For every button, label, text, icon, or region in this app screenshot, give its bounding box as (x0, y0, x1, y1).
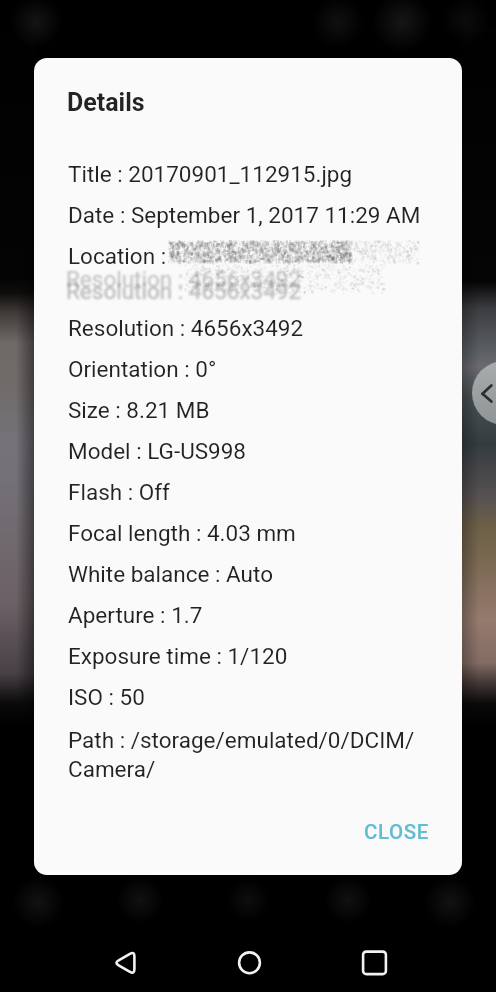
staticText: Resolution : 4656x3492 (66, 278, 302, 304)
staticText: Resolution : 4656x3492 (64, 279, 300, 305)
staticText: Resolution : 4656x3492 (64, 268, 300, 294)
staticText: Resolution : 4656x3492 (68, 279, 304, 305)
staticText: Resolution : 4656x3492 (66, 266, 302, 292)
staticText: Camera/ (68, 756, 433, 782)
staticText: Resolution : 4656x3492 (64, 264, 300, 290)
staticText: CLOSE (364, 820, 429, 844)
staticText: Focal length : 4.03 mm (68, 520, 433, 546)
staticText: Date : September 1, 2017 11:29 AM (68, 202, 433, 228)
staticText: Resolution : 4656x3492 (68, 268, 304, 294)
staticText: Resolution : 4656x3492 (67, 264, 303, 290)
staticText: Title : 20170901_112915.jpg (68, 161, 433, 187)
staticText: Resolution : 4656x3492 (65, 265, 301, 291)
staticText: Resolution : 4656x3492 (64, 280, 300, 306)
staticText: Resolution : 4656x3492 (68, 278, 304, 304)
staticText: Orientation : 0° (68, 356, 433, 382)
staticText: Model : LG-US998 (68, 438, 433, 464)
staticText: Resolution : 4656x3492 (65, 277, 301, 303)
button[interactable]: CLOSE (348, 808, 444, 856)
staticText: Resolution : 4656x3492 (65, 268, 301, 294)
staticText: Resolution : 4656x3492 (67, 268, 303, 294)
staticText: Resolution : 4656x3492 (64, 267, 300, 293)
staticText: Exposure time : 1/120 (68, 643, 433, 669)
staticText: Aperture : 1.7 (68, 602, 433, 628)
staticText: Resolution : 4656x3492 (65, 278, 301, 304)
staticText: Resolution : 4656x3492 (65, 280, 301, 306)
staticText: Resolution : 4656x3492 (64, 278, 300, 304)
staticText: Resolution : 4656x3492 (65, 279, 301, 305)
staticText: Resolution : 4656x3492 (66, 279, 302, 305)
staticText: Resolution : 4656x3492 (67, 278, 303, 304)
button[interactable]: Home (208, 925, 292, 992)
staticText: Resolution : 4656x3492 (65, 267, 301, 293)
staticText: Resolution : 4656x3492 (66, 268, 302, 294)
staticText: Resolution : 4656x3492 (66, 265, 302, 291)
staticText: Resolution : 4656x3492 (68, 277, 304, 303)
staticText: Resolution : 4656x3492 (68, 266, 304, 292)
staticText: Resolution : 4656x3492 (67, 265, 303, 291)
staticText: Resolution : 4656x3492 (67, 280, 303, 306)
button[interactable]: Previous (472, 361, 496, 425)
staticText: Resolution : 4656x3492 (64, 277, 300, 303)
staticText: Resolution : 4656x3492 (66, 277, 302, 303)
staticText: Resolution : 4656x3492 (67, 266, 303, 292)
staticText: Resolution : 4656x3492 (68, 276, 304, 302)
staticText: ISO : 50 (68, 684, 433, 710)
staticText: Size : 8.21 MB (68, 397, 433, 423)
staticText: Resolution : 4656x3492 (64, 266, 300, 292)
staticText: Resolution : 4656x3492 (64, 265, 300, 291)
staticText: Resolution : 4656x3492 (64, 276, 300, 302)
button[interactable]: Back (82, 925, 166, 992)
staticText: Resolution : 4656x3492 (68, 264, 304, 290)
staticText: Details (67, 88, 145, 117)
staticText: Resolution : 4656x3492 (68, 265, 304, 291)
staticText: Resolution : 4656x3492 (67, 267, 303, 293)
staticText: Resolution : 4656x3492 (67, 277, 303, 303)
staticText: Flash : Off (68, 479, 433, 505)
staticText: Location : (68, 243, 433, 269)
staticText: Resolution : 4656x3492 (68, 315, 433, 341)
staticText: Resolution : 4656x3492 (65, 264, 301, 290)
staticText: Resolution : 4656x3492 (68, 267, 304, 293)
staticText: Resolution : 4656x3492 (66, 280, 302, 306)
button[interactable]: Recent apps (333, 925, 417, 992)
staticText: Resolution : 4656x3492 (67, 276, 303, 302)
staticText: Resolution : 4656x3492 (68, 280, 304, 306)
staticText: White balance : Auto (68, 561, 433, 587)
staticText: Resolution : 4656x3492 (67, 279, 303, 305)
staticText: Resolution : 4656x3492 (65, 266, 301, 292)
staticText: Resolution : 4656x3492 (66, 276, 302, 302)
staticText: Resolution : 4656x3492 (65, 276, 301, 302)
staticText: Resolution : 4656x3492 (66, 267, 302, 293)
staticText: Resolution : 4656x3492 (66, 264, 302, 290)
staticText: Path : /storage/emulated/0/DCIM/ (68, 727, 433, 753)
